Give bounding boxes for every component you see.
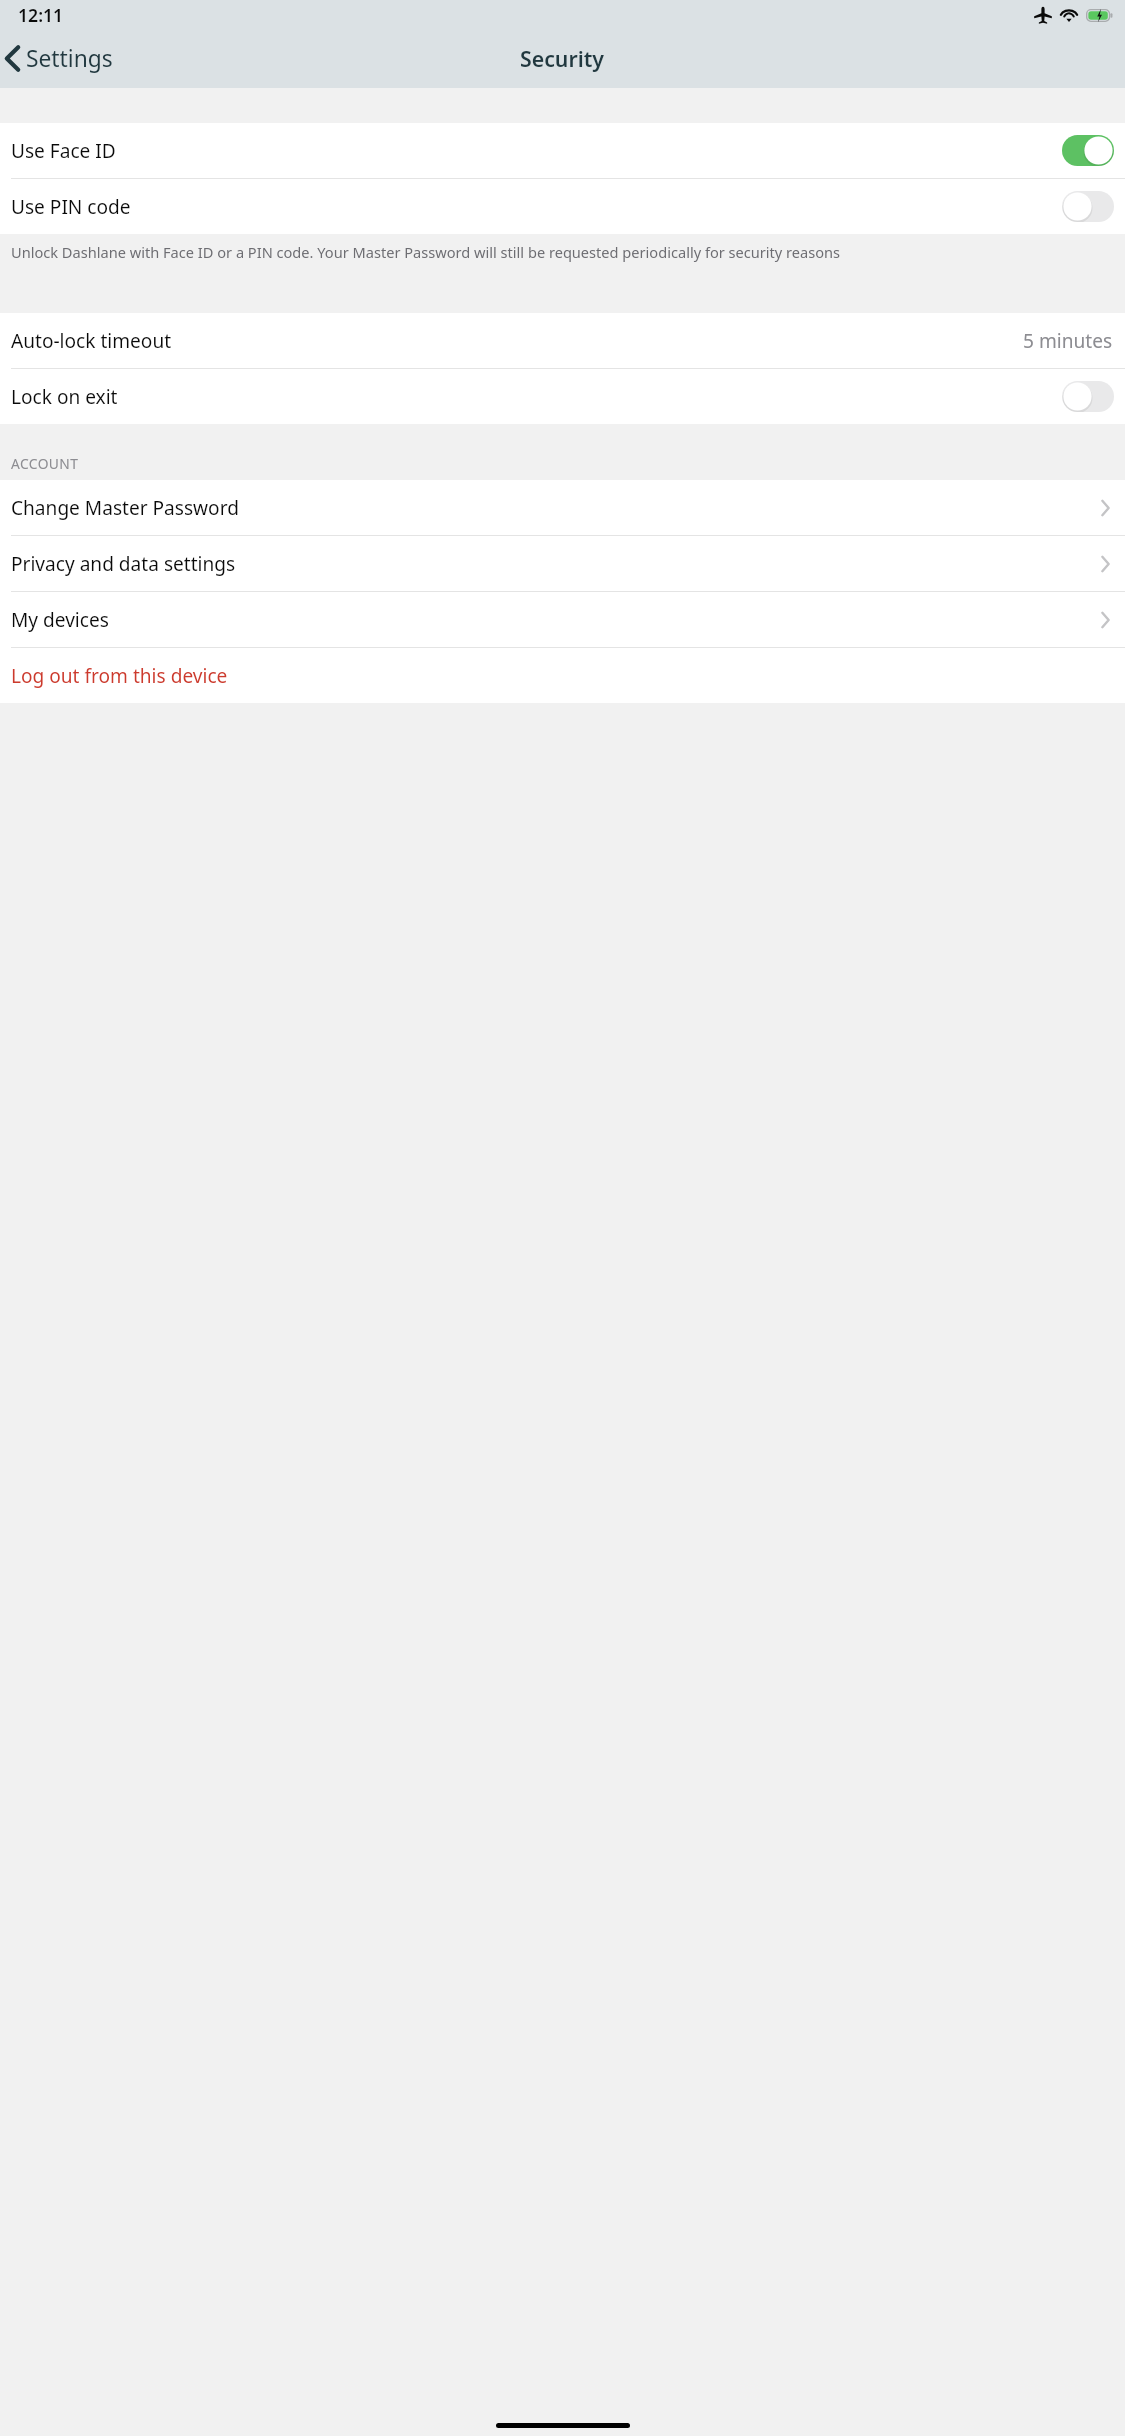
other: Off bbox=[1062, 191, 1114, 222]
staticText: 5 minutes bbox=[1023, 328, 1113, 354]
staticText: ACCOUNT bbox=[11, 454, 79, 473]
staticText: 12:11 bbox=[18, 3, 64, 27]
staticText: My devices bbox=[11, 607, 109, 633]
staticText: Auto-lock timeout bbox=[11, 328, 172, 354]
staticText: Privacy and data settings bbox=[11, 551, 236, 577]
staticText: Use Face ID bbox=[11, 138, 116, 164]
staticText: Unlock Dashlane with Face ID or a PIN co… bbox=[11, 242, 841, 262]
button[interactable]: Auto-lock timeout bbox=[0, 313, 1125, 368]
button[interactable]: Log out from this device bbox=[0, 648, 1125, 703]
staticText: Use PIN code bbox=[11, 194, 131, 220]
other: Off bbox=[1062, 381, 1114, 412]
button[interactable]: Lock on exit bbox=[0, 369, 1125, 424]
other: On bbox=[1062, 135, 1114, 166]
other: Airplane mode bbox=[1034, 6, 1052, 24]
staticText: Lock on exit bbox=[11, 384, 118, 410]
staticText: Settings bbox=[26, 43, 113, 74]
staticText: Log out from this device bbox=[11, 663, 228, 689]
button[interactable]: Change Master Password bbox=[0, 480, 1125, 535]
button[interactable]: Use PIN code bbox=[0, 179, 1125, 234]
button[interactable]: Privacy and data settings bbox=[0, 536, 1125, 591]
staticText: Change Master Password bbox=[11, 495, 239, 521]
button[interactable]: Settings bbox=[0, 35, 123, 82]
other: Wi-Fi bbox=[1060, 9, 1078, 22]
other: Battery charging bbox=[1086, 9, 1113, 22]
button[interactable]: Use Face ID bbox=[0, 123, 1125, 178]
staticText: Security bbox=[520, 44, 605, 73]
button[interactable]: My devices bbox=[0, 592, 1125, 647]
